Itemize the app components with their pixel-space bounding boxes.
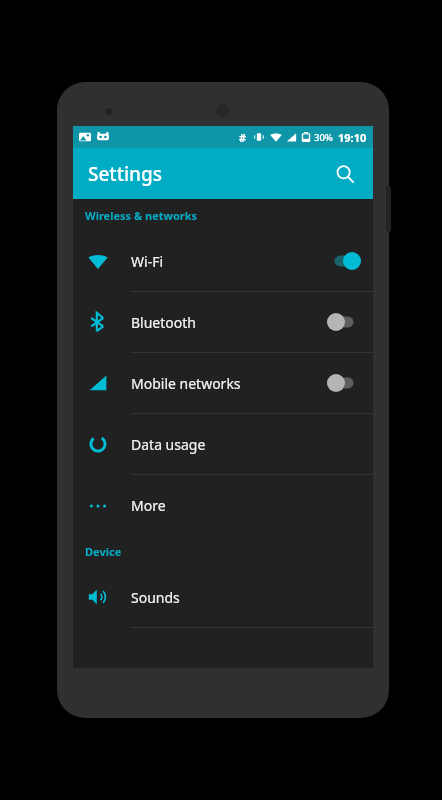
button[interactable]: Bluetooth xyxy=(73,292,373,352)
button[interactable]: Off xyxy=(327,374,361,392)
button[interactable]: Search xyxy=(325,154,365,194)
button[interactable]: Data usage xyxy=(73,414,373,474)
button[interactable]: Mobile networks xyxy=(73,353,373,413)
staticText: Data usage xyxy=(131,435,206,454)
button[interactable]: Off xyxy=(327,313,361,331)
staticText: Wireless & networks xyxy=(85,208,198,223)
button[interactable]: More xyxy=(73,475,373,535)
button[interactable]: On xyxy=(327,252,361,270)
staticText: Wi-Fi xyxy=(131,252,164,271)
staticText: Device xyxy=(85,544,122,559)
button[interactable]: Sounds xyxy=(73,567,373,627)
button[interactable]: Wi-Fi xyxy=(73,231,373,291)
staticText: More xyxy=(131,496,166,515)
staticText: 19:10 xyxy=(338,130,367,145)
staticText: Bluetooth xyxy=(131,313,196,332)
staticText: 30% xyxy=(314,131,333,144)
staticText: Sounds xyxy=(131,588,180,607)
staticText: Mobile networks xyxy=(131,374,241,393)
staticText: # xyxy=(239,130,247,145)
staticText: Settings xyxy=(88,161,162,187)
